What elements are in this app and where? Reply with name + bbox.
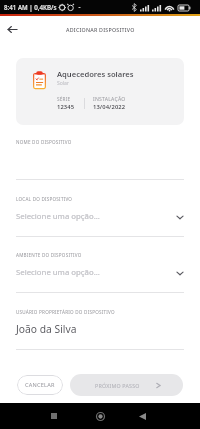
button[interactable]: Voltar [2, 19, 22, 39]
staticText: Selecione uma opção... [16, 211, 100, 222]
staticText: SÉRIE [57, 96, 71, 102]
button[interactable]: AMBIENTE DO DISPOSITIVO [16, 248, 184, 293]
staticText: Selecione uma opção... [16, 267, 100, 278]
staticText: PRÓXIMO PASSO [95, 382, 140, 389]
staticText: 13/04/2022 [93, 103, 126, 111]
staticText: CANCELAR [25, 381, 55, 389]
button[interactable]: LOCAL DO DISPOSITIVO [16, 192, 184, 237]
staticText: 8:41 AM | 0,4KB/s [4, 3, 57, 11]
staticText: Aquecedores solares [57, 69, 134, 79]
staticText: NOME DO DISPOSITIVO [16, 139, 72, 145]
staticText: USUÁRIO PROPRIETÁRIO DO DISPOSITIVO [16, 309, 115, 315]
staticText: Solar [57, 80, 69, 87]
staticText: João da Silva [16, 322, 77, 336]
button[interactable]: Aquecedores solares [16, 58, 184, 125]
button[interactable]: NOME DO DISPOSITIVO [16, 135, 184, 180]
button[interactable]: USUÁRIO PROPRIETÁRIO DO DISPOSITIVO [16, 305, 184, 350]
staticText: LOCAL DO DISPOSITIVO [16, 196, 73, 202]
button[interactable]: Voltar [134, 408, 150, 424]
button[interactable]: CANCELAR [17, 375, 63, 395]
button[interactable]: Recentes [46, 408, 62, 424]
staticText: INSTALAÇÃO [93, 96, 126, 103]
staticText: 12345 [57, 103, 75, 111]
button[interactable]: PRÓXIMO PASSO [70, 374, 183, 396]
staticText: AMBIENTE DO DISPOSITIVO [16, 252, 82, 258]
staticText: ADICIONAR DISPOSITIVO [66, 26, 135, 33]
button[interactable]: Início [92, 408, 108, 424]
